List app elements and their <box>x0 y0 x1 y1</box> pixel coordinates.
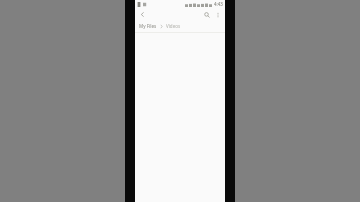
button[interactable]: My Files <box>138 22 158 30</box>
staticText: 4:43 <box>214 1 223 7</box>
button[interactable]: More options <box>212 9 223 20</box>
button[interactable]: Videos <box>165 22 182 30</box>
button[interactable]: Search <box>201 9 212 20</box>
staticText: Videos <box>166 23 181 29</box>
button[interactable]: Back <box>137 9 148 20</box>
staticText: My Files <box>139 23 157 29</box>
